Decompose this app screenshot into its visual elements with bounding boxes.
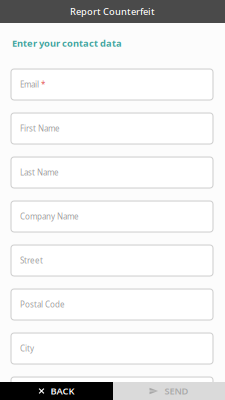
button[interactable]: Street: [11, 245, 213, 276]
button[interactable]: Last Name: [11, 157, 213, 188]
staticText: Email: [20, 79, 39, 90]
staticText: *: [39, 79, 45, 90]
staticText: Report Counterfeit: [70, 5, 155, 18]
button[interactable]: BACK: [0, 382, 113, 400]
button[interactable]: Email: [11, 69, 213, 100]
staticText: Postal Code: [20, 299, 65, 310]
staticText: Country: [20, 387, 50, 398]
staticText: City: [20, 343, 34, 354]
button[interactable]: First Name: [11, 113, 213, 144]
button[interactable]: SEND: [113, 382, 225, 400]
staticText: Enter your contact data: [12, 37, 122, 49]
staticText: SEND: [164, 385, 188, 397]
button[interactable]: City: [11, 333, 213, 364]
staticText: Last Name: [20, 167, 59, 178]
button[interactable]: Postal Code: [11, 289, 213, 320]
staticText: First Name: [20, 123, 60, 134]
staticText: BACK: [50, 385, 74, 397]
staticText: Street: [20, 255, 43, 266]
staticText: Company Name: [20, 211, 79, 222]
button[interactable]: Country: [11, 377, 213, 400]
button[interactable]: Company Name: [11, 201, 213, 232]
